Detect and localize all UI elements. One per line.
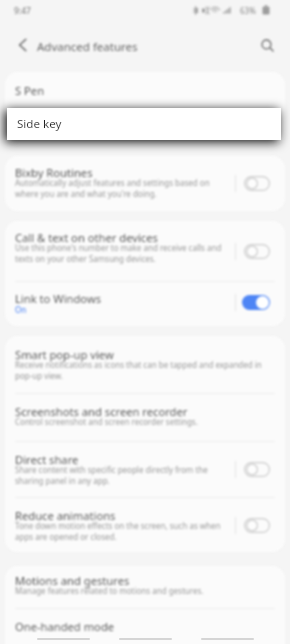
staticText: Side key (17, 116, 62, 132)
staticText: S Pen (15, 83, 45, 98)
button[interactable]: Back (9, 31, 37, 59)
button[interactable]: Off (244, 176, 270, 191)
staticText: Call & text on other devices (15, 230, 158, 245)
button[interactable]: Direct share (5, 441, 285, 497)
button[interactable]: Call & text on other devices (5, 221, 285, 281)
staticText: One-handed mode (15, 619, 115, 634)
button[interactable]: S Pen (5, 72, 285, 108)
staticText: Motions and gestures (15, 573, 130, 588)
staticText: Link to Windows (15, 291, 102, 306)
button[interactable]: Search (253, 31, 281, 59)
staticText: Manage features related to motions and g… (15, 585, 204, 596)
staticText: Side key (15, 119, 58, 134)
staticText: Reduce animations (15, 508, 116, 523)
staticText: Automatically adjust features and settin… (15, 177, 210, 199)
button[interactable]: Off (244, 244, 270, 259)
button[interactable]: Reduce animations (5, 497, 285, 552)
staticText: 63% (240, 5, 256, 16)
staticText: 9:47 (14, 5, 31, 17)
button[interactable]: Motions and gestures (5, 566, 285, 608)
button[interactable]: One-handed mode (5, 608, 285, 644)
staticText: Screenshots and screen recorder (15, 404, 188, 419)
button[interactable]: On (242, 295, 270, 310)
staticText: Receive notifications as icons that can … (15, 359, 262, 381)
button[interactable]: Side key (7, 108, 281, 140)
staticText: Control screenshot and screen recorder s… (15, 416, 198, 427)
button[interactable]: Off (244, 518, 270, 533)
staticText: Bixby Routines (15, 165, 93, 180)
staticText: Advanced features (37, 39, 138, 55)
staticText: Smart pop-up view (15, 347, 114, 362)
staticText: Tone down motion effects on the screen, … (15, 520, 221, 542)
button[interactable]: Side key (5, 108, 285, 145)
staticText: Direct share (15, 452, 79, 467)
staticText: Share content with specific people direc… (15, 464, 208, 486)
button[interactable]: Off (244, 462, 270, 477)
staticText: Use this phone's number to make and rece… (15, 242, 222, 264)
button[interactable]: Screenshots and screen recorder (5, 393, 285, 441)
button[interactable]: Link to Windows (5, 281, 285, 326)
staticText: On (15, 304, 27, 315)
button[interactable]: Smart pop-up view (5, 336, 285, 393)
button[interactable]: Bixby Routines (5, 156, 285, 211)
